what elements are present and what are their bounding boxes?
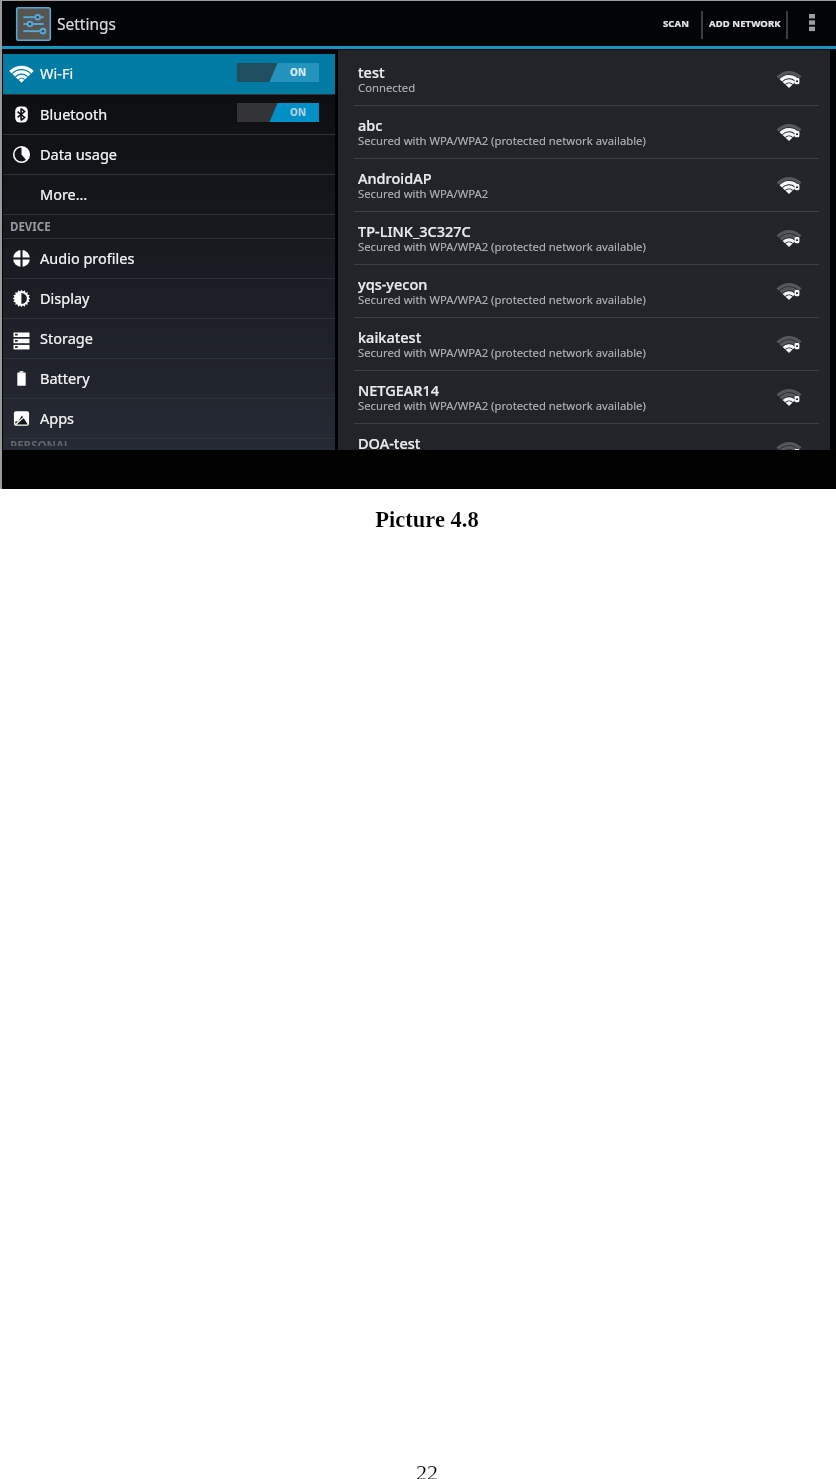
button[interactable]: Apps: [3, 399, 335, 438]
staticText: Bluetooth: [40, 104, 108, 124]
staticText: yqs-yecon: [358, 274, 428, 294]
button[interactable]: Settings: [16, 7, 51, 41]
staticText: Secured with WPA/WPA2: [358, 186, 489, 201]
staticText: DEVICE: [10, 219, 51, 235]
button[interactable]: Display: [3, 279, 335, 318]
button[interactable]: Bluetooth: [3, 95, 335, 134]
staticText: Wi-Fi: [40, 63, 74, 83]
staticText: test: [358, 62, 385, 82]
button[interactable]: Wi-Fi: [3, 54, 335, 94]
staticText: abc: [358, 115, 383, 135]
staticText: PERSONAL: [10, 438, 71, 446]
staticText: 22: [9, 1460, 836, 1479]
staticText: More…: [40, 184, 88, 204]
staticText: ADD NETWORK: [709, 17, 781, 30]
button[interactable]: Storage: [3, 319, 335, 358]
staticText: Connected: [358, 80, 416, 95]
staticText: Apps: [40, 408, 75, 428]
button[interactable]: SCAN: [649, 1, 703, 46]
staticText: Secured with WPA/WPA2 (protected network…: [358, 292, 646, 307]
button[interactable]: Toggle on: [237, 103, 319, 122]
staticText: Secured with WPA/WPA2 (protected network…: [358, 345, 646, 360]
button[interactable]: yqs-yecon: [338, 265, 831, 317]
staticText: Data usage: [40, 144, 117, 164]
button[interactable]: DOA-test: [338, 424, 831, 450]
staticText: AndroidAP: [358, 168, 432, 188]
staticText: Audio profiles: [40, 248, 135, 268]
staticText: Secured with WPA/WPA2 (protected network…: [358, 133, 646, 148]
button[interactable]: More options: [790, 1, 834, 46]
staticText: ON: [290, 65, 307, 79]
staticText: Picture 4.8: [9, 507, 836, 532]
button[interactable]: ADD NETWORK: [703, 1, 786, 46]
staticText: ON: [290, 105, 307, 119]
button[interactable]: Battery: [3, 359, 335, 398]
staticText: Battery: [40, 368, 90, 388]
button[interactable]: NETGEAR14: [338, 371, 831, 423]
staticText: TP-LINK_3C327C: [358, 221, 471, 241]
button[interactable]: test: [338, 53, 831, 105]
button[interactable]: TP-LINK_3C327C: [338, 212, 831, 264]
button[interactable]: Audio profiles: [3, 239, 335, 278]
staticText: Settings: [57, 13, 116, 34]
staticText: DOA-test: [358, 433, 421, 453]
staticText: SCAN: [663, 17, 690, 30]
button[interactable]: kaikatest: [338, 318, 831, 370]
staticText: Secured with WPA/WPA2 (protected network…: [358, 239, 646, 254]
staticText: Storage: [40, 328, 93, 348]
button[interactable]: Toggle on: [237, 63, 319, 82]
button[interactable]: Data usage: [3, 135, 335, 174]
button[interactable]: More…: [3, 175, 335, 214]
button[interactable]: abc: [338, 106, 831, 158]
staticText: NETGEAR14: [358, 380, 440, 400]
staticText: Display: [40, 288, 90, 308]
staticText: Secured with WPA/WPA2 (protected network…: [358, 398, 646, 413]
staticText: kaikatest: [358, 327, 422, 347]
button[interactable]: AndroidAP: [338, 159, 831, 211]
